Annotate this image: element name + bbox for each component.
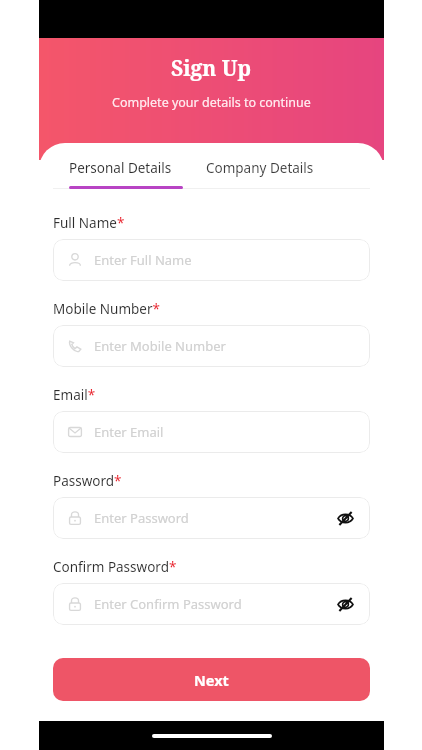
staticText: Full Name* bbox=[53, 214, 125, 232]
button[interactable]: Enter Email bbox=[53, 411, 370, 453]
staticText: Enter Full Name bbox=[94, 251, 192, 269]
staticText: Sign Up bbox=[171, 54, 252, 83]
staticText: Personal Details bbox=[69, 159, 172, 177]
staticText: Next bbox=[194, 670, 229, 690]
button[interactable]: Enter Mobile Number bbox=[53, 325, 370, 367]
staticText: Confirm Password* bbox=[53, 558, 177, 576]
staticText: Enter Mobile Number bbox=[94, 337, 226, 355]
staticText: Complete your details to continue bbox=[112, 94, 311, 111]
button[interactable]: Toggle password visibility bbox=[334, 593, 356, 615]
button[interactable]: Toggle password visibility bbox=[334, 507, 356, 529]
button[interactable]: Enter Full Name bbox=[53, 239, 370, 281]
staticText: Company Details bbox=[206, 159, 314, 177]
staticText: Email* bbox=[53, 386, 96, 404]
staticText: Password* bbox=[53, 472, 122, 490]
button[interactable]: Enter Confirm Password bbox=[53, 583, 370, 625]
staticText: Mobile Number* bbox=[53, 300, 160, 318]
button[interactable]: Next bbox=[53, 658, 370, 701]
staticText: Enter Password bbox=[94, 509, 189, 527]
button[interactable]: Personal Details bbox=[53, 153, 188, 183]
button[interactable]: Company Details bbox=[196, 153, 324, 183]
staticText: Enter Email bbox=[94, 423, 164, 441]
staticText: Enter Confirm Password bbox=[94, 595, 242, 613]
button[interactable]: Enter Password bbox=[53, 497, 370, 539]
